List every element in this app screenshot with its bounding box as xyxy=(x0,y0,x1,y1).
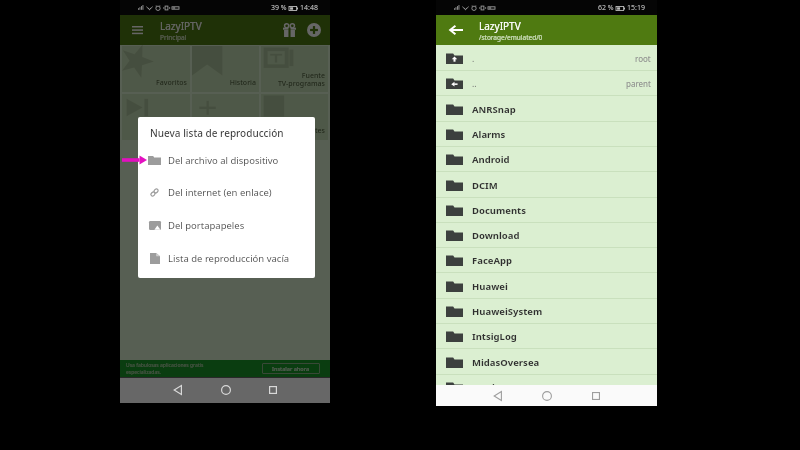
staticText: Nueva lista de reproducción xyxy=(150,126,284,140)
staticText: MidasOversea xyxy=(472,356,540,369)
button[interactable]: HuaweiSystem xyxy=(436,299,657,324)
staticText: FaceApp xyxy=(472,254,513,267)
staticText: Historia xyxy=(229,78,256,88)
staticText: Fuente TV-programas xyxy=(277,71,325,88)
staticText: Reproductor xyxy=(145,126,187,136)
button[interactable]: Home xyxy=(202,377,249,403)
staticText: DCIM xyxy=(472,179,498,192)
button[interactable]: Huawei xyxy=(436,274,657,299)
button[interactable]: Historia xyxy=(192,46,259,92)
staticText: Android xyxy=(472,153,510,166)
button[interactable]: Android xyxy=(436,147,657,172)
button[interactable]: Back xyxy=(154,377,201,403)
button[interactable]: Del internet (en enlace) xyxy=(138,176,315,208)
button[interactable]: Download xyxy=(436,223,657,248)
button[interactable]: Gift xyxy=(279,20,299,40)
staticText: Download xyxy=(472,229,520,242)
staticText: Del archivo al dispositivo xyxy=(168,154,279,167)
button[interactable]: Music xyxy=(436,375,657,400)
staticText: Del internet (en enlace) xyxy=(168,186,272,199)
button[interactable]: Ajustes xyxy=(261,94,328,140)
button[interactable]: Home xyxy=(522,385,571,406)
button[interactable]: Reproductor xyxy=(122,94,190,140)
button[interactable]: Recent apps xyxy=(571,385,620,406)
button[interactable]: . xyxy=(436,46,657,71)
staticText: root xyxy=(635,53,651,64)
button[interactable]: Add playlist xyxy=(304,20,324,40)
staticText: /storage/emulated/0 xyxy=(479,33,543,42)
button[interactable]: .. xyxy=(436,71,657,96)
staticText: Del portapapeles xyxy=(168,219,245,232)
button[interactable]: ANRSnap xyxy=(436,97,657,122)
staticText: 15:19 xyxy=(627,3,645,13)
staticText: Usa fabulosas aplicaciones gratis especi… xyxy=(126,362,204,375)
staticText: IntsigLog xyxy=(472,330,517,343)
button[interactable]: Instalar ahora xyxy=(262,363,320,374)
button[interactable]: Alarms xyxy=(436,122,657,147)
staticText: .. xyxy=(472,78,477,90)
staticText: Favoritos xyxy=(156,78,187,88)
staticText: 39 % xyxy=(271,3,287,13)
staticText: LazyIPTV xyxy=(160,19,202,33)
staticText: Documents xyxy=(472,204,526,217)
button[interactable]: Back xyxy=(473,385,522,406)
button[interactable]: Menu xyxy=(128,21,146,39)
button[interactable]: Del portapapeles xyxy=(138,209,315,241)
button[interactable]: Favoritos xyxy=(122,46,190,92)
staticText: Añadir xyxy=(233,126,256,136)
staticText: LazyIPTV xyxy=(479,19,521,33)
button[interactable]: Back xyxy=(446,20,466,40)
staticText: parent xyxy=(626,78,651,89)
button[interactable]: IntsigLog xyxy=(436,324,657,349)
staticText: HuaweiSystem xyxy=(472,305,543,318)
button[interactable]: Lista de reproducción vacía xyxy=(138,242,315,274)
button[interactable]: Fuente TV-programas xyxy=(261,46,328,92)
staticText: ANRSnap xyxy=(472,103,516,116)
staticText: 62 % xyxy=(598,3,614,13)
button[interactable]: Del archivo al dispositivo xyxy=(138,144,315,176)
staticText: Lista de reproducción vacía xyxy=(168,252,290,265)
button[interactable]: MidasOversea xyxy=(436,350,657,375)
staticText: 14:48 xyxy=(300,3,318,13)
staticText: . xyxy=(472,53,475,65)
staticText: Principal xyxy=(160,33,187,42)
button[interactable]: DCIM xyxy=(436,173,657,198)
staticText: Instalar ahora xyxy=(272,365,310,372)
button[interactable]: Documents xyxy=(436,198,657,223)
button[interactable]: FaceApp xyxy=(436,248,657,273)
button[interactable]: Recent apps xyxy=(249,377,296,403)
staticText: Huawei xyxy=(472,280,508,293)
staticText: Music xyxy=(472,381,500,394)
button[interactable]: Añadir xyxy=(192,94,259,140)
staticText: Alarms xyxy=(472,128,506,141)
staticText: Ajustes xyxy=(300,126,325,136)
